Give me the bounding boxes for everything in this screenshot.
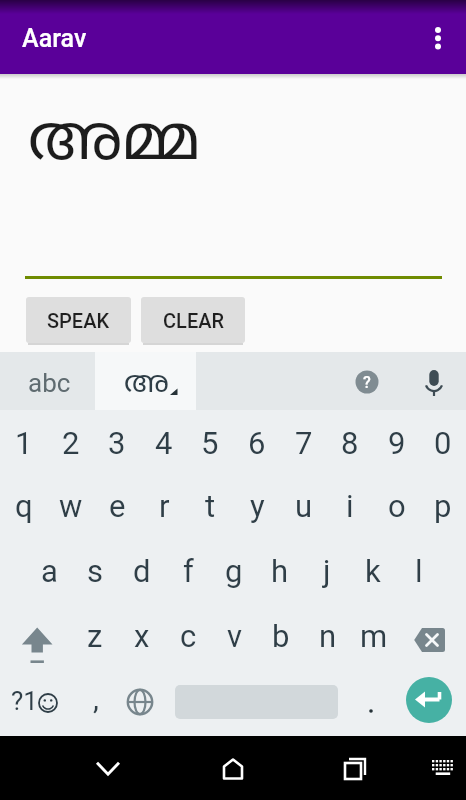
button[interactable]: l xyxy=(396,543,442,599)
button[interactable]: d xyxy=(119,543,165,599)
staticText: Aarav xyxy=(22,24,87,53)
staticText: ?1 xyxy=(11,686,38,716)
staticText: g xyxy=(225,553,243,589)
button[interactable]: ? xyxy=(351,366,383,398)
staticText: q xyxy=(15,488,33,524)
button[interactable]: x xyxy=(119,608,165,664)
staticText: e xyxy=(109,488,126,524)
button[interactable] xyxy=(418,16,458,60)
button[interactable] xyxy=(84,745,132,793)
button[interactable]: z xyxy=(72,608,118,664)
button[interactable] xyxy=(406,614,452,666)
button[interactable]: w xyxy=(48,478,94,534)
staticText: 6 xyxy=(248,425,266,461)
staticText: p xyxy=(434,488,452,524)
button[interactable]: n xyxy=(305,608,351,664)
button[interactable] xyxy=(418,365,450,401)
button[interactable]: r xyxy=(141,478,187,534)
button[interactable]: m xyxy=(351,608,397,664)
button[interactable]: h xyxy=(257,543,303,599)
button[interactable]: i xyxy=(327,478,373,534)
staticText: CLEAR xyxy=(163,309,224,332)
staticText: r xyxy=(159,488,170,524)
button[interactable]: 5 xyxy=(187,415,233,471)
button[interactable]: u xyxy=(281,478,327,534)
button[interactable]: 2 xyxy=(48,415,94,471)
button[interactable]: 9 xyxy=(374,415,420,471)
staticText: abc xyxy=(28,368,71,398)
button[interactable]: s xyxy=(72,543,118,599)
staticText: 2 xyxy=(62,425,80,461)
staticText: k xyxy=(365,553,381,589)
staticText: z xyxy=(87,618,103,654)
button[interactable]: p xyxy=(420,478,466,534)
button[interactable]: 6 xyxy=(234,415,280,471)
button[interactable]: y xyxy=(234,478,280,534)
staticText: u xyxy=(295,488,313,524)
button[interactable]: v xyxy=(212,608,258,664)
button[interactable] xyxy=(209,745,257,793)
button[interactable]: f xyxy=(165,543,211,599)
staticText: w xyxy=(59,488,83,524)
staticText: 4 xyxy=(155,425,173,461)
staticText: h xyxy=(271,553,289,589)
staticText: f xyxy=(183,553,194,589)
staticText: y xyxy=(250,488,265,524)
staticText: o xyxy=(388,488,406,524)
button[interactable]: 7 xyxy=(281,415,327,471)
button[interactable]: 3 xyxy=(94,415,140,471)
staticText: 1 xyxy=(15,425,33,461)
staticText: അ xyxy=(124,366,169,403)
staticText: t xyxy=(205,488,216,524)
staticText: c xyxy=(180,618,197,654)
staticText: 3 xyxy=(108,425,126,461)
button[interactable]: SPEAK xyxy=(26,297,131,343)
button[interactable] xyxy=(117,677,163,727)
button[interactable]: 1 xyxy=(1,415,47,471)
button[interactable]: c xyxy=(165,608,211,664)
staticText: m xyxy=(360,618,388,654)
staticText: 0 xyxy=(434,425,452,461)
staticText: ? xyxy=(363,373,371,392)
staticText: l xyxy=(415,553,423,589)
staticText: b xyxy=(272,618,290,654)
button[interactable]: അ xyxy=(116,355,176,413)
staticText: SPEAK xyxy=(47,309,110,332)
button[interactable]: t xyxy=(187,478,233,534)
staticText: v xyxy=(227,618,243,654)
staticText: i xyxy=(346,488,354,524)
button[interactable] xyxy=(406,677,452,723)
button[interactable]: 4 xyxy=(141,415,187,471)
staticText: , xyxy=(93,681,99,716)
button[interactable]: j xyxy=(304,543,350,599)
staticText: j xyxy=(323,553,331,589)
button[interactable]: CLEAR xyxy=(141,297,245,343)
staticText: 9 xyxy=(388,425,406,461)
staticText: x xyxy=(134,618,150,654)
button[interactable] xyxy=(331,749,379,797)
staticText: d xyxy=(133,553,151,589)
staticText: 8 xyxy=(341,425,359,461)
button[interactable]: k xyxy=(350,543,396,599)
staticText: 5 xyxy=(201,425,219,461)
button[interactable]: e xyxy=(94,478,140,534)
button[interactable]: q xyxy=(1,478,47,534)
button[interactable]: o xyxy=(374,478,420,534)
staticText: s xyxy=(87,553,103,589)
button[interactable]: a xyxy=(26,543,72,599)
button[interactable] xyxy=(95,352,196,410)
staticText: 7 xyxy=(295,425,313,461)
button[interactable] xyxy=(14,611,60,667)
staticText: a xyxy=(41,553,58,589)
button[interactable] xyxy=(423,752,463,784)
button[interactable]: ?1 xyxy=(2,676,46,726)
button[interactable]: , xyxy=(81,673,111,723)
button[interactable]: b xyxy=(258,608,304,664)
button[interactable]: 0 xyxy=(420,415,466,471)
button[interactable]: g xyxy=(211,543,257,599)
staticText: അമ്മ xyxy=(28,105,201,184)
staticText: n xyxy=(319,618,337,654)
button[interactable]: abc xyxy=(2,354,97,412)
button[interactable]: 8 xyxy=(327,415,373,471)
